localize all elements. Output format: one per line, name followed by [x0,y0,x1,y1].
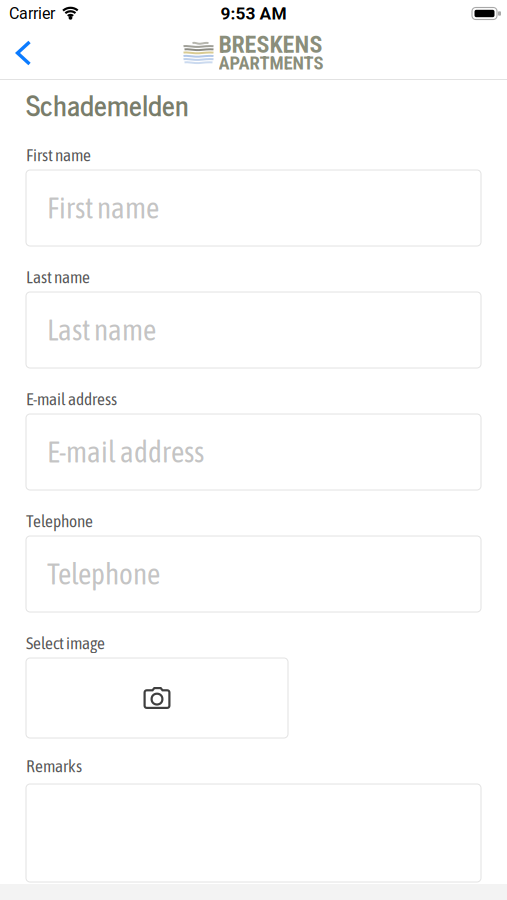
staticText: 9:53 AM [220,3,286,24]
button[interactable]: First name [26,170,481,246]
staticText: Carrier [9,4,55,23]
button[interactable]: Last name [26,292,481,368]
staticText: E-mail address [26,389,117,409]
button[interactable]: E-mail address [26,414,481,490]
staticText: Schademelden [26,81,189,127]
staticText: Remarks [26,756,82,776]
button[interactable]: Select image [26,658,288,738]
staticText: First name [26,145,91,165]
staticText: E-mail address [47,435,204,469]
staticText: BRESKENS [218,30,322,58]
staticText: First name [47,191,159,225]
button[interactable]: Telephone [26,536,481,612]
staticText: Last name [26,267,90,287]
staticText: Select image [26,633,105,653]
staticText: Last name [47,313,156,347]
staticText: Telephone [26,511,93,531]
button[interactable]: Back [0,27,48,79]
staticText: APARTMENTS [218,52,323,74]
staticText: Telephone [47,557,160,591]
